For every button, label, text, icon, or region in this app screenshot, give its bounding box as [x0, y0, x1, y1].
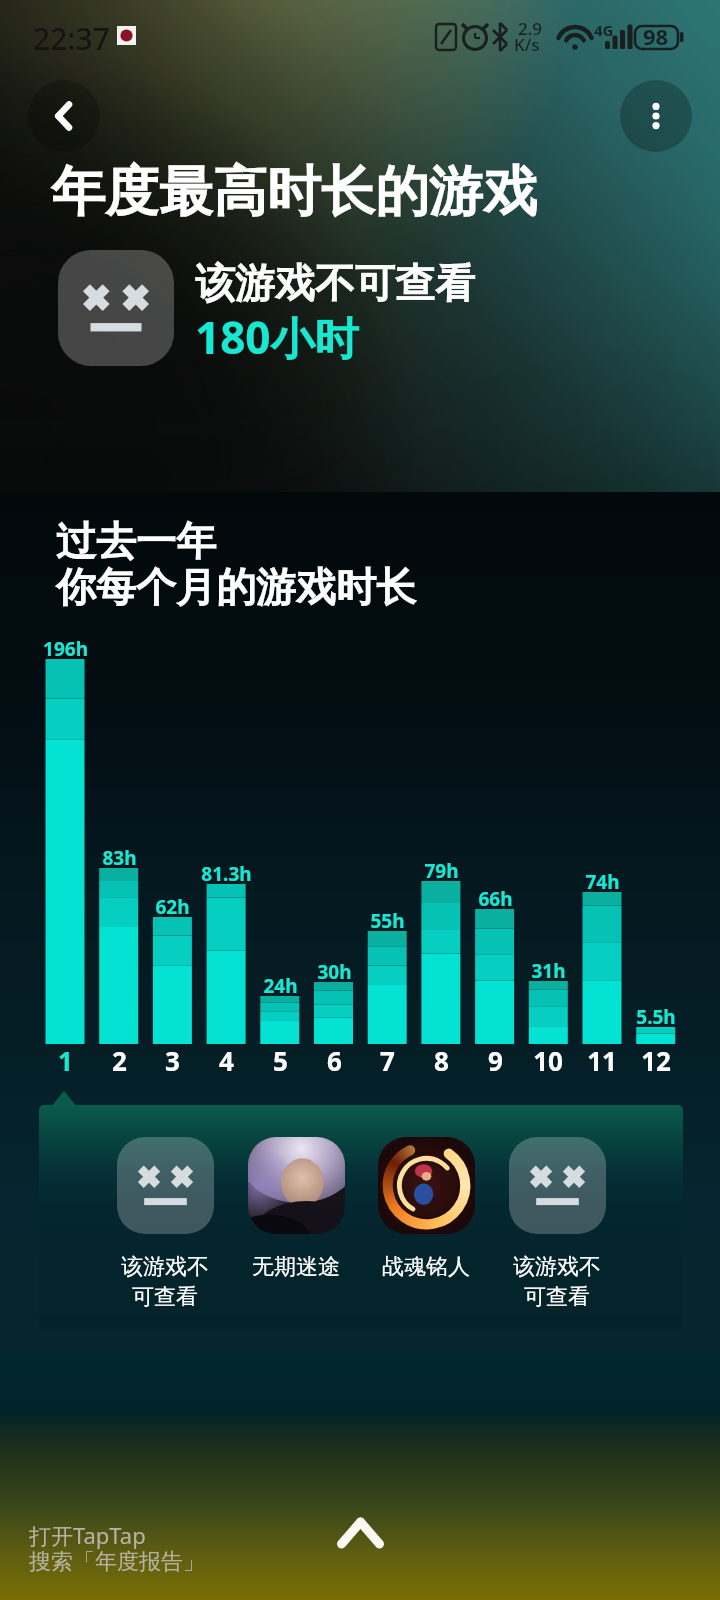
staticText: 该游戏不可查看 [195, 258, 475, 308]
staticText: 5.5h [636, 1004, 676, 1030]
staticText: 打开TapTap [29, 1520, 146, 1550]
staticText: 12 [641, 1043, 671, 1078]
staticText: 83h [102, 845, 137, 871]
staticText: 5 [273, 1043, 288, 1078]
staticText: 2 [112, 1043, 127, 1078]
staticText: 55h [370, 908, 405, 934]
staticText: 战魂铭人 [361, 1253, 491, 1281]
staticText: 81.3h [201, 861, 252, 887]
button[interactable]: 该游戏不 可查看 [100, 1137, 230, 1311]
staticText: 74h [585, 869, 620, 895]
staticText: 4G [594, 20, 614, 40]
staticText: 你每个月的游戏时长 [56, 562, 416, 612]
staticText: 66h [478, 886, 513, 912]
staticText: 98 [643, 21, 669, 51]
button[interactable]: 该游戏不 可查看 [492, 1137, 622, 1311]
staticText: 8 [434, 1043, 449, 1078]
staticText: 搜索「年度报告」 [29, 1548, 205, 1576]
staticText: 1 [58, 1043, 73, 1078]
staticText: 过去一年 [56, 516, 216, 566]
staticText: 4 [219, 1043, 234, 1078]
staticText: 2.9 [518, 17, 543, 40]
staticText: 9 [488, 1043, 503, 1078]
staticText: 62h [155, 894, 190, 920]
button[interactable]: More options [620, 80, 692, 152]
staticText: 7 [380, 1043, 395, 1078]
staticText: K/s [514, 33, 540, 56]
button[interactable]: Back [28, 80, 100, 152]
staticText: 196h [43, 636, 88, 662]
staticText: 30h [317, 959, 352, 985]
staticText: 无期迷途 [231, 1253, 361, 1281]
staticText: 31h [531, 958, 566, 984]
staticText: 该游戏不 可查看 [100, 1253, 230, 1311]
staticText: 22:37 [33, 18, 110, 59]
staticText: 79h [424, 858, 459, 884]
staticText: 11 [587, 1043, 617, 1078]
button[interactable]: Scroll up [320, 1496, 400, 1576]
staticText: 24h [263, 973, 298, 999]
staticText: 该游戏不 可查看 [492, 1253, 622, 1311]
staticText: 年度最高时长的游戏 [51, 158, 537, 226]
staticText: 10 [533, 1043, 563, 1078]
button[interactable]: 无期迷途 [231, 1137, 361, 1281]
staticText: 180小时 [195, 307, 359, 367]
staticText: 6 [327, 1043, 342, 1078]
button[interactable]: 战魂铭人 [361, 1137, 491, 1281]
staticText: 3 [165, 1043, 180, 1078]
